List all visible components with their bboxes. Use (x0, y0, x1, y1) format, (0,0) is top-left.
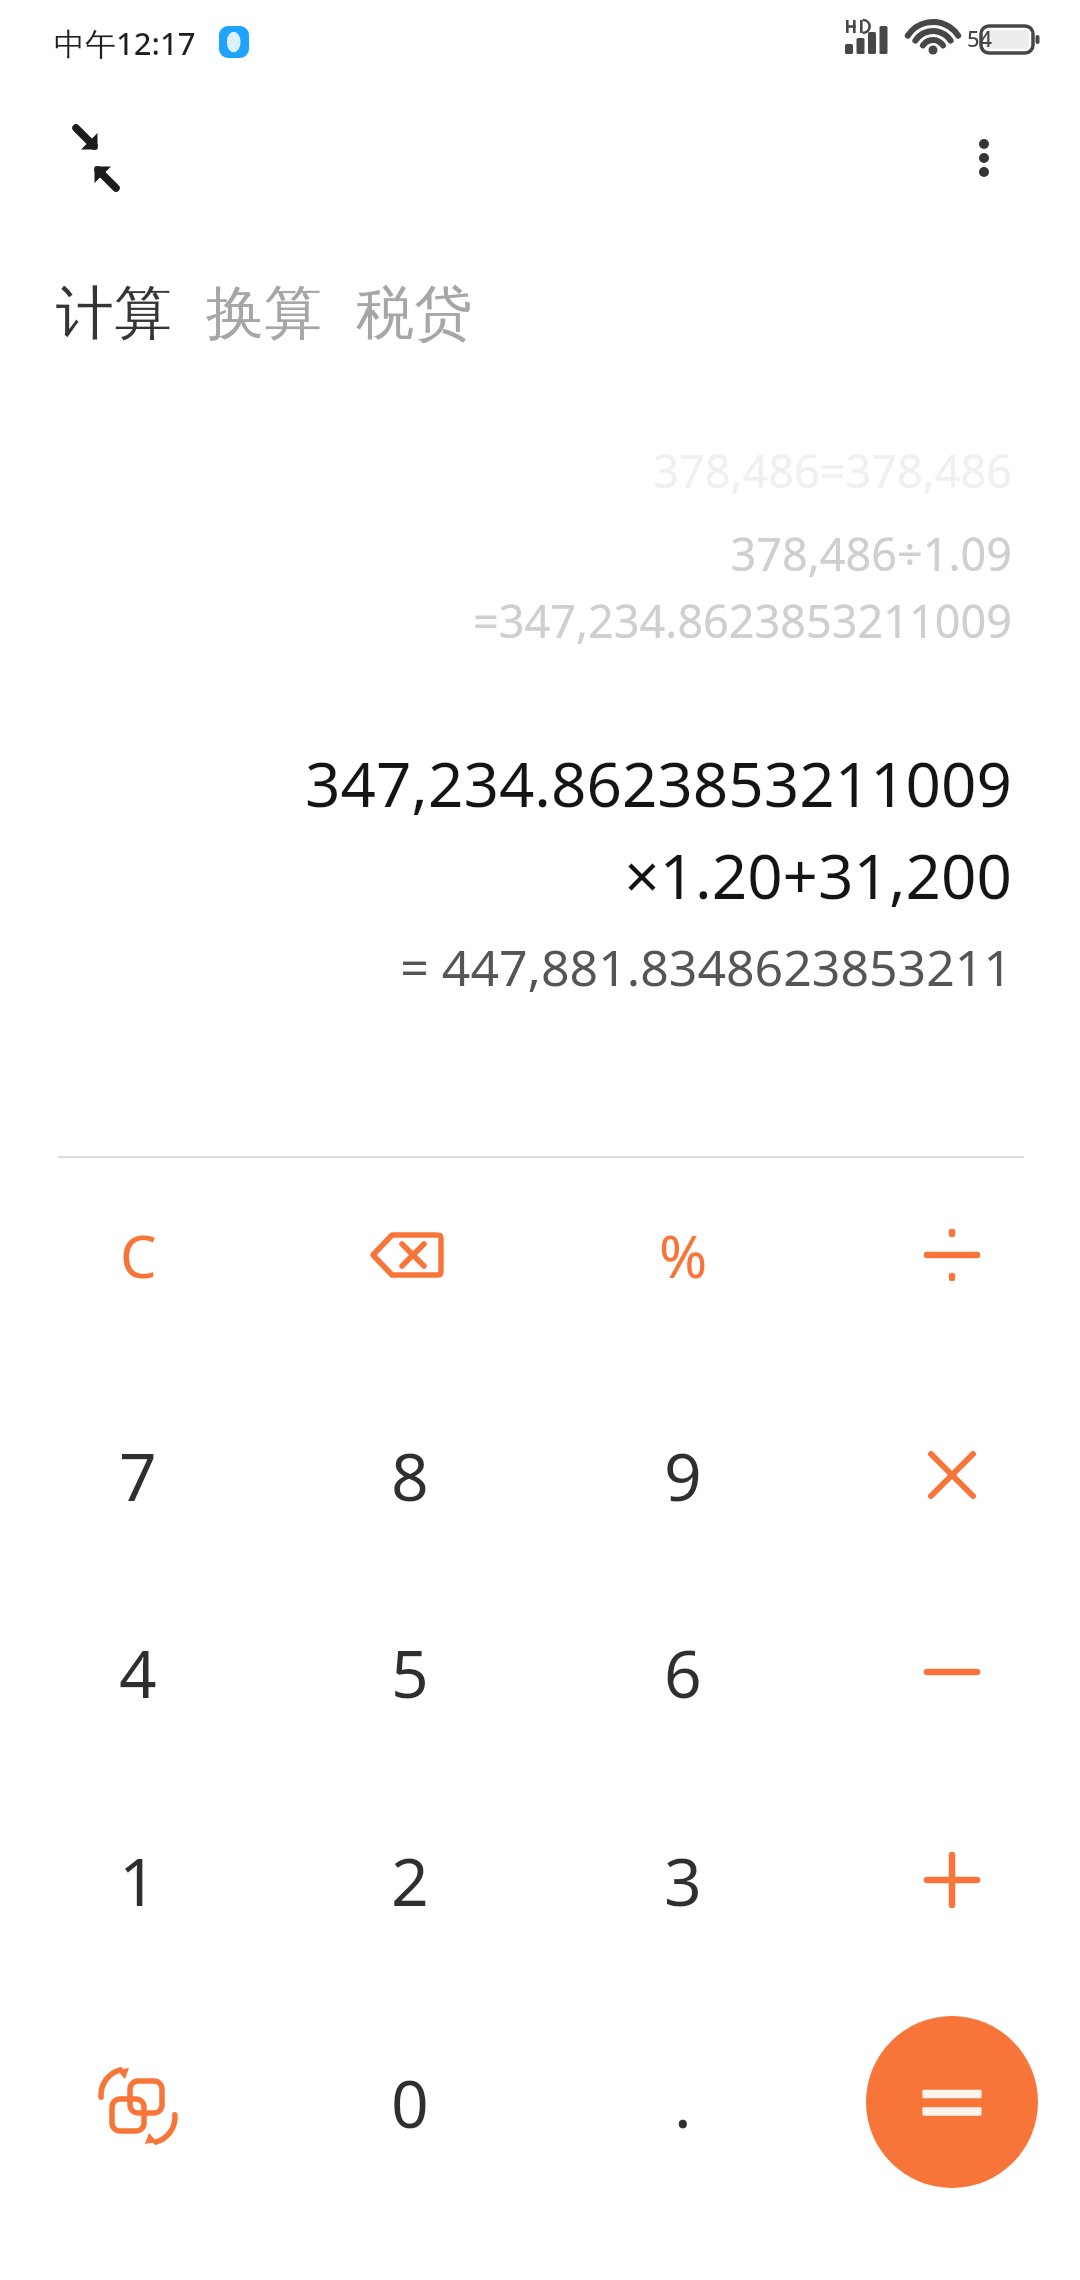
staticText: = 447,881.8348623853211 (400, 933, 1012, 1001)
button[interactable]: 6 (583, 1587, 783, 1757)
staticText: 计算 (56, 277, 172, 350)
staticText: ×1.20+31,200 (624, 833, 1012, 917)
staticText: =347,234.8623853211009 (473, 590, 1012, 651)
staticText: 347,234.8623853211009 (304, 741, 1012, 825)
staticText: 8 (391, 1430, 429, 1520)
staticText: 6 (664, 1627, 702, 1717)
button[interactable]: 换算 (204, 269, 324, 358)
staticText: 378,486÷1.09 (730, 523, 1012, 584)
button[interactable]: 5 (310, 1587, 510, 1757)
button[interactable]: Minus (852, 1587, 1052, 1757)
button[interactable]: 0 (310, 2017, 510, 2187)
staticText: 5 (391, 1627, 429, 1717)
button[interactable]: Collapse (48, 110, 144, 206)
staticText: 378,486=378,486 (653, 440, 1012, 501)
button[interactable]: Equals (866, 2016, 1038, 2188)
button[interactable]: More options (936, 110, 1032, 206)
staticText: 中午12:17 (54, 22, 196, 64)
button[interactable]: Plus (852, 1795, 1052, 1965)
button[interactable]: 4 (38, 1587, 238, 1757)
staticText: 2 (391, 1835, 429, 1925)
button[interactable]: 3 (583, 1795, 783, 1965)
staticText: 税贷 (356, 277, 472, 350)
staticText: C (120, 1216, 157, 1295)
button[interactable]: . (583, 2017, 783, 2187)
button[interactable]: 1 (38, 1795, 238, 1965)
button[interactable]: Multiply (852, 1390, 1052, 1560)
button[interactable]: 税贷 (354, 269, 474, 358)
button[interactable]: 2 (310, 1795, 510, 1965)
button[interactable]: Backspace (310, 1170, 510, 1340)
button[interactable]: Unit conversion (38, 2017, 238, 2187)
staticText: 换算 (206, 277, 322, 350)
button[interactable]: C (38, 1170, 238, 1340)
button[interactable]: % (583, 1170, 783, 1340)
staticText: 4 (119, 1627, 157, 1717)
staticText: 7 (119, 1430, 157, 1520)
button[interactable]: 8 (310, 1390, 510, 1560)
staticText: 54 (967, 23, 993, 53)
button[interactable]: 7 (38, 1390, 238, 1560)
button[interactable]: Divide (852, 1170, 1052, 1340)
staticText: % (659, 1216, 708, 1295)
staticText: 0 (391, 2057, 429, 2147)
button[interactable]: 计算 (54, 269, 174, 358)
staticText: 1 (119, 1835, 157, 1925)
staticText: . (674, 2057, 692, 2147)
button[interactable]: 9 (583, 1390, 783, 1560)
staticText: 9 (664, 1430, 702, 1520)
staticText: 3 (664, 1835, 702, 1925)
